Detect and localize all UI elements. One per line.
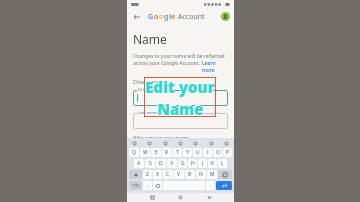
staticText: C <box>166 171 170 178</box>
button[interactable]: N <box>196 170 206 179</box>
staticText: Anyone can see this information when <box>143 146 224 152</box>
staticText: Y <box>186 149 189 156</box>
button[interactable]: Recents <box>149 194 156 201</box>
staticText: g <box>164 12 169 22</box>
staticText: Edit your <box>144 76 214 96</box>
staticText: Name <box>133 31 167 47</box>
staticText: O <box>216 149 220 156</box>
button[interactable]: V <box>174 170 184 179</box>
staticText: M <box>210 171 215 178</box>
button[interactable]: E <box>151 148 161 157</box>
button[interactable]: Account <box>221 12 230 21</box>
staticText: T <box>176 149 179 156</box>
button[interactable]: Enter <box>216 181 232 190</box>
button[interactable]: K <box>208 159 217 168</box>
staticText: , <box>147 182 149 189</box>
button[interactable]: Shift <box>129 170 142 179</box>
button[interactable]: J <box>198 159 207 168</box>
button[interactable]: Z <box>143 170 152 179</box>
staticText: J <box>202 160 204 167</box>
button[interactable]: Keyboard tool 2 <box>163 141 168 146</box>
button[interactable]: W <box>140 148 150 157</box>
staticText: L <box>221 160 224 167</box>
staticText: . <box>210 182 212 189</box>
button[interactable]: Backspace <box>218 170 232 179</box>
staticText: U <box>196 149 200 156</box>
button[interactable]: Keyboard tool 6 <box>224 141 229 146</box>
button[interactable]: Y <box>183 148 192 157</box>
button[interactable]: D <box>156 159 166 168</box>
staticText: G <box>181 160 185 167</box>
staticText: D <box>159 160 163 167</box>
button[interactable]: Emoji <box>153 181 162 190</box>
staticText: o <box>159 12 164 22</box>
staticText: Name <box>158 100 205 118</box>
button[interactable]: Back <box>131 11 142 22</box>
button[interactable]: Symbols <box>129 181 142 190</box>
staticText: Edit your <box>146 78 216 98</box>
button[interactable]: L <box>218 159 227 168</box>
button[interactable]: Q <box>129 148 139 157</box>
button[interactable]: F <box>167 159 177 168</box>
button[interactable]: X <box>153 170 162 179</box>
staticText: I <box>207 149 209 156</box>
staticText: across your Google Account. <box>133 60 202 67</box>
button[interactable]: Home <box>177 194 184 201</box>
button[interactable]: . <box>206 181 215 190</box>
staticText: l <box>169 12 171 22</box>
staticText: Who can see your name <box>133 135 190 142</box>
button[interactable] <box>133 90 228 106</box>
button[interactable]: G <box>178 159 187 168</box>
button[interactable]: T <box>173 148 182 157</box>
button[interactable]: Keyboard tool 4 <box>193 141 198 146</box>
staticText: they communicate with you or view con... <box>143 152 228 164</box>
button[interactable]: Keyboard tool 1 <box>147 141 152 146</box>
button[interactable]: Keyboard tool 3 <box>178 141 183 146</box>
staticText: Name <box>157 99 204 117</box>
staticText: W <box>143 149 148 156</box>
staticText: Z <box>146 171 149 178</box>
staticText: N <box>199 171 203 178</box>
button[interactable]: S <box>145 159 155 168</box>
button[interactable]: A <box>134 159 144 168</box>
staticText: R <box>165 149 169 156</box>
staticText: A <box>137 160 141 167</box>
button[interactable]: Learn more <box>202 60 228 74</box>
staticText: Q <box>132 149 136 156</box>
staticText: P <box>226 149 230 156</box>
button[interactable]: C <box>163 170 173 179</box>
button[interactable]: Keyboard tool 5 <box>209 141 214 146</box>
staticText: B <box>188 171 192 178</box>
staticText: o <box>154 12 159 22</box>
staticText: ?123 <box>132 183 140 188</box>
staticText: H <box>191 160 195 167</box>
staticText: Chosen name <box>133 79 166 86</box>
button[interactable]: B <box>185 170 195 179</box>
staticText: Edit your <box>145 77 215 97</box>
button[interactable]: M <box>207 170 217 179</box>
staticText: Changes to your name will be reflected <box>133 53 225 60</box>
button[interactable] <box>133 113 228 129</box>
button[interactable]: U <box>193 148 202 157</box>
button[interactable]: P <box>223 148 232 157</box>
staticText: V <box>177 171 181 178</box>
button[interactable]: R <box>162 148 172 157</box>
button[interactable]: Back <box>206 194 213 201</box>
button[interactable]: O <box>213 148 222 157</box>
staticText: Name <box>156 98 203 116</box>
button[interactable]: Keyboard tool 0 <box>132 141 137 146</box>
staticText: F <box>171 160 174 167</box>
staticText: Last name <box>138 110 158 115</box>
button[interactable]: H <box>188 159 197 168</box>
staticText: Account <box>178 12 205 22</box>
staticText: G <box>148 12 154 22</box>
staticText: First name <box>138 87 158 92</box>
button[interactable]: , <box>143 181 152 190</box>
staticText: X <box>156 171 159 178</box>
staticText: E <box>155 149 158 156</box>
staticText: S <box>149 160 152 167</box>
button[interactable]: I <box>203 148 212 157</box>
staticText: e <box>171 12 176 22</box>
staticText: K <box>211 160 215 167</box>
